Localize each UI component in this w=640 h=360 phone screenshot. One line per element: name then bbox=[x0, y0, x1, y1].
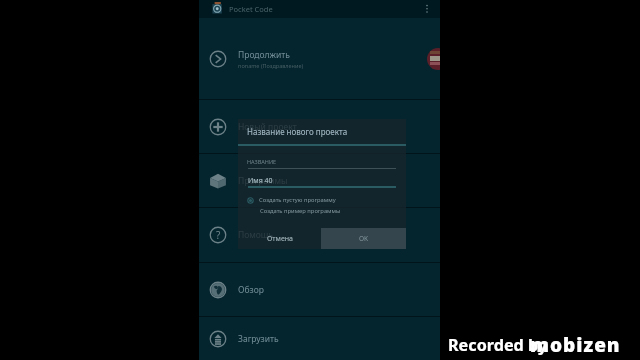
staticText: Обзор bbox=[238, 284, 264, 296]
staticText: Pocket Code bbox=[229, 4, 273, 14]
button[interactable]: Обзор bbox=[199, 263, 440, 316]
staticText: Отмена bbox=[267, 234, 294, 244]
staticText: Новый проект bbox=[238, 121, 297, 133]
button[interactable]: ? bbox=[199, 208, 440, 262]
staticText: noname (Поздравление) bbox=[238, 62, 304, 69]
staticText: Загрузить bbox=[238, 333, 279, 345]
staticText: ? bbox=[216, 228, 221, 242]
staticText: Создать пример программы bbox=[260, 207, 341, 215]
staticText: Recorded by bbox=[448, 334, 548, 356]
button[interactable]: Продолжить bbox=[199, 18, 440, 99]
staticText: Имя 40 bbox=[248, 176, 273, 186]
button[interactable]: More options bbox=[418, 0, 436, 18]
button[interactable]: OK bbox=[321, 228, 406, 249]
staticText: Название нового проекта bbox=[247, 126, 348, 137]
button[interactable]: Создать пустую программу bbox=[247, 194, 336, 206]
button[interactable]: Загрузить bbox=[199, 317, 440, 360]
staticText: OK bbox=[359, 234, 369, 243]
staticText: Помощь bbox=[238, 229, 274, 241]
staticText: НАЗВАНИЕ bbox=[247, 158, 277, 165]
button[interactable]: Новый проект bbox=[199, 100, 440, 153]
button[interactable]: Отмена bbox=[258, 228, 302, 249]
staticText: Создать пустую программу bbox=[259, 196, 336, 204]
staticText: mobizen bbox=[530, 332, 621, 358]
button[interactable]: Программы bbox=[199, 154, 440, 207]
staticText: Продолжить bbox=[238, 49, 290, 61]
button[interactable]: Создать пример программы bbox=[260, 205, 341, 217]
staticText: Программы bbox=[238, 175, 288, 187]
